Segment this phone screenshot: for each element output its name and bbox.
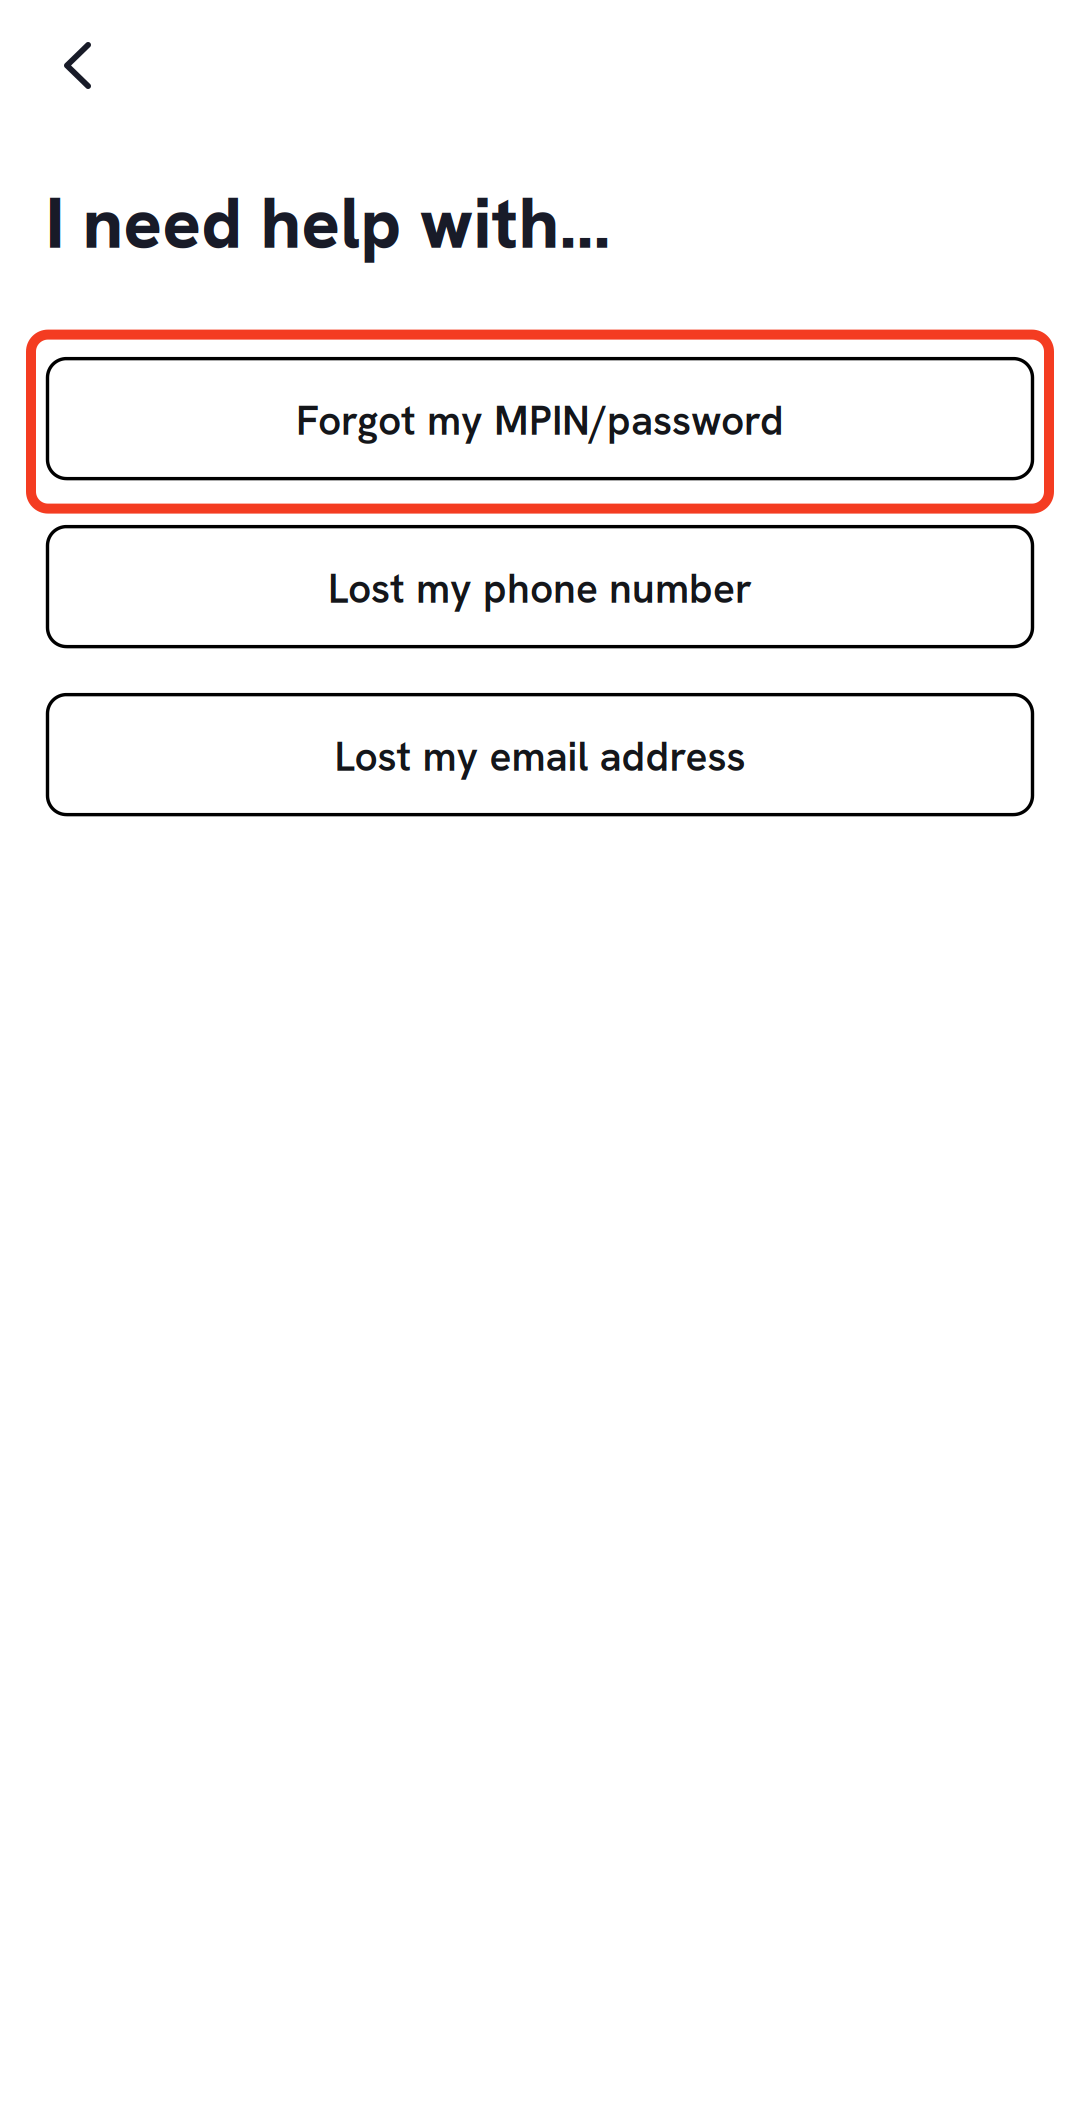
staticText: Lost my phone number (328, 562, 752, 615)
staticText: Forgot my MPIN/password (296, 394, 784, 447)
button[interactable]: Lost my phone number (47, 527, 1032, 647)
button[interactable]: Back (0, 0, 125, 123)
staticText: Lost my email address (334, 730, 745, 783)
button[interactable]: Lost my email address (47, 695, 1032, 815)
staticText: I need help with... (45, 177, 610, 269)
button[interactable]: Forgot my MPIN/password (47, 359, 1032, 479)
